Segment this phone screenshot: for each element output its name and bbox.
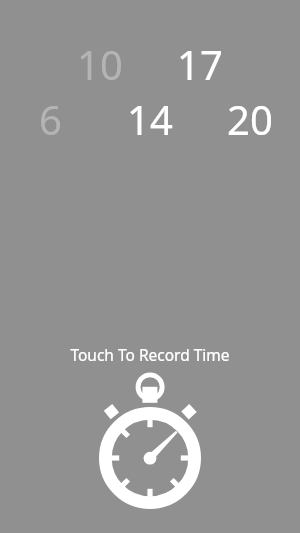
staticText: 10 — [77, 37, 123, 91]
staticText: 20 — [227, 92, 273, 146]
staticText: 17 — [177, 37, 223, 91]
other: Stopwatch — [95, 375, 205, 512]
button[interactable]: Touch To Record Time — [0, 0, 300, 533]
staticText: 14 — [127, 92, 173, 146]
staticText: 6 — [39, 92, 62, 146]
staticText: Touch To Record Time — [70, 344, 230, 365]
